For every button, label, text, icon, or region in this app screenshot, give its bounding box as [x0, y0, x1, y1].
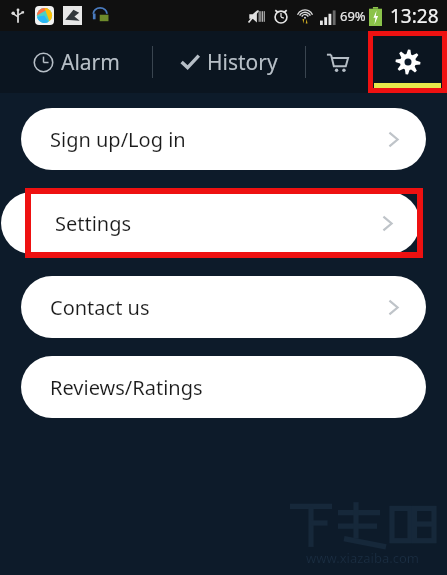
button[interactable]: Settings: [1, 192, 420, 254]
staticText: Reviews/Ratings: [50, 374, 203, 401]
staticText: 13:28: [390, 3, 439, 29]
button[interactable]: Alarm: [0, 31, 152, 93]
button[interactable]: Sign up/Log in: [21, 108, 426, 170]
staticText: Settings: [55, 210, 132, 237]
staticText: 69%: [340, 7, 366, 25]
button[interactable]: Contact us: [21, 276, 426, 338]
button[interactable]: Settings: [368, 31, 447, 93]
staticText: Contact us: [50, 294, 150, 321]
staticText: Alarm: [61, 48, 120, 77]
button[interactable]: Reviews/Ratings: [21, 356, 426, 418]
staticText: www.xiazaiba.com: [306, 549, 419, 567]
button[interactable]: History: [153, 31, 305, 93]
staticText: History: [207, 48, 278, 77]
button[interactable]: Cart: [306, 31, 368, 93]
staticText: Sign up/Log in: [50, 126, 186, 153]
